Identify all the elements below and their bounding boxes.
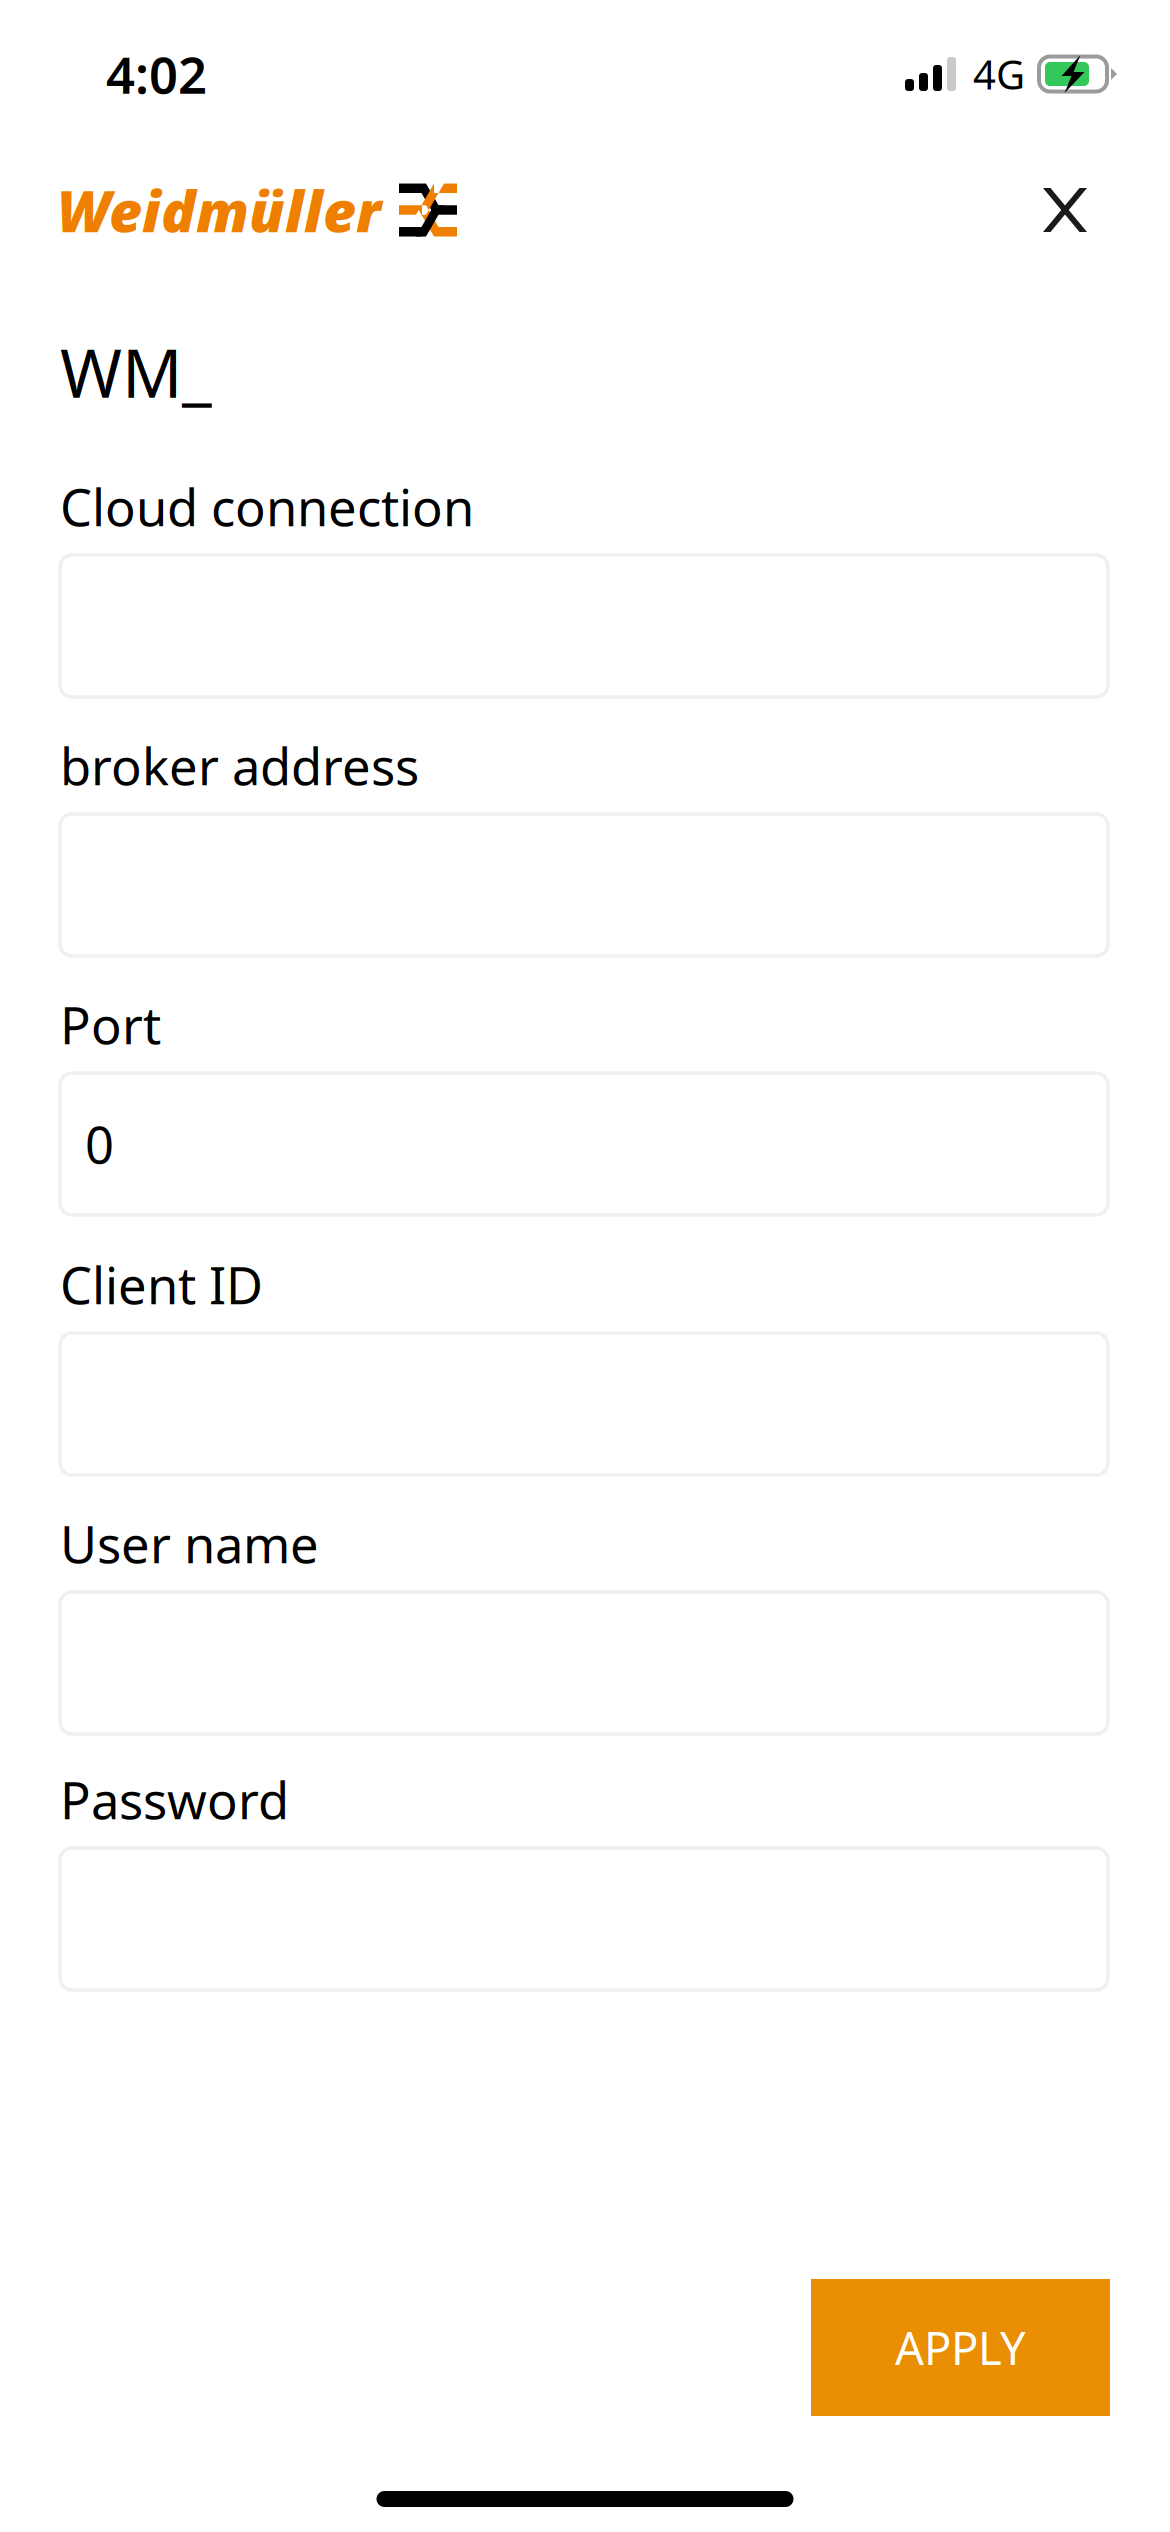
- staticText: WM_: [60, 328, 212, 416]
- button[interactable]: Port: [60, 1073, 1108, 1215]
- staticText: APPLY: [895, 2317, 1026, 2378]
- staticText: Cloud connection: [60, 473, 474, 540]
- button[interactable]: APPLY: [811, 2279, 1110, 2416]
- staticText: User name: [60, 1510, 319, 1577]
- staticText: Weidmüller: [57, 172, 381, 248]
- staticText: Password: [60, 1766, 289, 1833]
- staticText: 4G: [973, 47, 1025, 100]
- staticText: 0: [85, 1110, 114, 1178]
- staticText: 4:02: [106, 40, 207, 108]
- staticText: Client ID: [60, 1251, 263, 1318]
- staticText: broker address: [60, 732, 419, 799]
- staticText: Port: [60, 991, 161, 1058]
- button[interactable]: Close: [1027, 172, 1103, 248]
